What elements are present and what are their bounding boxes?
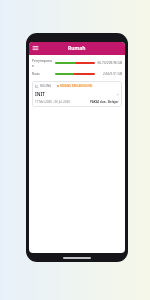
button[interactable]: SELLING [32, 81, 122, 107]
staticText: 66.73/209.96 GB [97, 61, 122, 65]
staticText: Rumah [68, 45, 86, 52]
staticText: PAKAI dua - Belajar [90, 100, 119, 104]
staticText: 2.66/5.51 GB [97, 72, 122, 76]
staticText: Ruas [32, 71, 53, 76]
button[interactable]: Menu [32, 45, 39, 52]
staticText: Penyimpanan [32, 58, 53, 68]
staticText: SEDANG BERLANGSUNG [60, 84, 93, 88]
staticText: INIT [35, 91, 45, 97]
staticText: 17 Mei 2020 - 06 Jul 2020 [35, 100, 70, 104]
staticText: SELLING [40, 84, 52, 88]
